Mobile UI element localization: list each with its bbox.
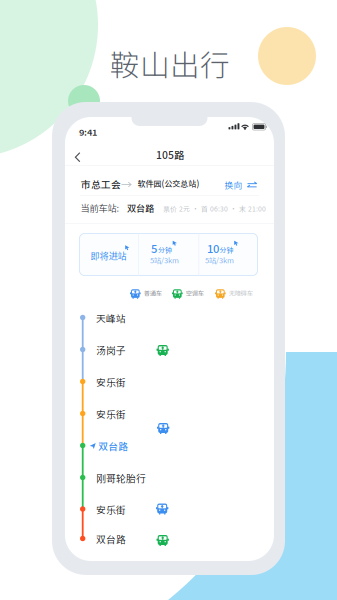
button[interactable]: 双台路 xyxy=(95,528,127,550)
staticText: 双台路 xyxy=(96,532,126,546)
staticText: 汤岗子 xyxy=(96,343,126,357)
button[interactable]: 汤岗子 xyxy=(95,339,127,361)
button[interactable]: 双台路 xyxy=(88,435,129,457)
staticText: 空调车 xyxy=(186,288,204,298)
staticText: 软件园(公交总站) xyxy=(137,177,199,189)
staticText: 5站/3km xyxy=(205,254,234,265)
staticText: 普通车 xyxy=(144,288,162,298)
staticText: 天峰站 xyxy=(96,311,126,325)
button[interactable]: 天峰站 xyxy=(95,307,127,329)
staticText: 5 xyxy=(151,240,157,256)
staticText: 分钟 xyxy=(219,245,233,255)
staticText: 5站/3km xyxy=(150,254,179,265)
staticText: 10 xyxy=(207,240,219,256)
staticText: 当前车站: xyxy=(80,201,119,214)
staticText: 无障碍车 xyxy=(229,288,253,298)
staticText: 9:41 xyxy=(79,125,97,138)
staticText: 刚哥轮胎行 xyxy=(96,471,146,485)
staticText: 分钟 xyxy=(158,245,172,255)
button[interactable]: 安乐街 xyxy=(95,371,127,393)
staticText: 市总工会 xyxy=(81,177,121,191)
button[interactable]: 安乐街 xyxy=(95,403,127,425)
button[interactable]: 安乐街 xyxy=(95,498,127,521)
staticText: 105路 xyxy=(156,147,184,162)
staticText: 双台路 xyxy=(98,439,128,453)
staticText: 安乐街 xyxy=(96,407,126,421)
staticText: 双台路 xyxy=(127,201,154,214)
button[interactable]: 换向 xyxy=(220,172,261,197)
staticText: 安乐街 xyxy=(96,375,126,389)
staticText: 票价 2元 · 首 06:30 · 末 21:00 xyxy=(163,203,266,213)
staticText: 安乐街 xyxy=(96,502,126,517)
staticText: 换向 xyxy=(224,178,242,191)
button[interactable]: 刚哥轮胎行 xyxy=(95,467,147,489)
button[interactable]: Back xyxy=(66,144,89,171)
staticText: 鞍山出行 xyxy=(110,42,230,85)
staticText: 即将进站 xyxy=(90,249,126,262)
